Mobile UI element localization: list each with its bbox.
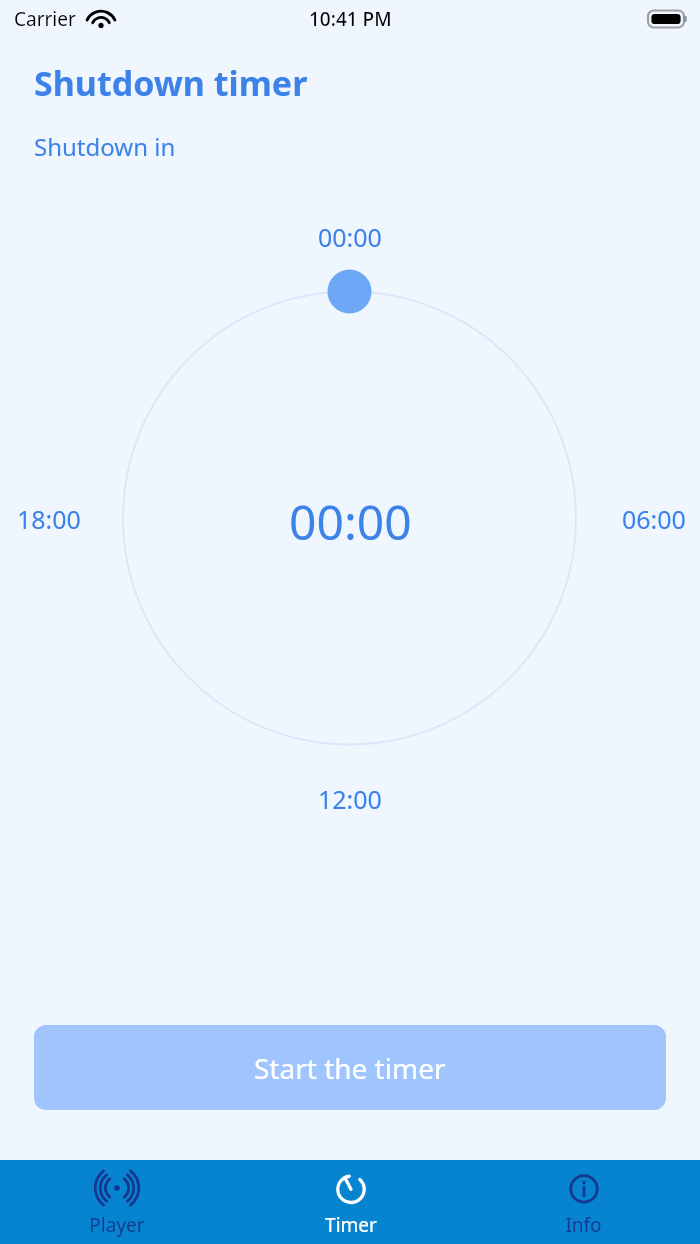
button[interactable]: Player xyxy=(0,1160,234,1244)
button[interactable]: Info xyxy=(467,1160,700,1244)
staticText: Timer xyxy=(325,1212,377,1238)
staticText: 10:41 PM xyxy=(309,6,392,32)
staticText: Player xyxy=(89,1212,145,1238)
button[interactable]: Timer xyxy=(234,1160,467,1244)
staticText: 00:00 xyxy=(289,489,412,554)
staticText: Shutdown in xyxy=(34,130,176,163)
staticText: Start the timer xyxy=(254,1049,446,1087)
button[interactable]: Start the timer xyxy=(34,1025,666,1110)
staticText: 12:00 xyxy=(318,782,382,816)
staticText: Shutdown timer xyxy=(34,60,308,106)
staticText: Info xyxy=(565,1212,602,1238)
staticText: Carrier xyxy=(14,6,76,32)
staticText: 18:00 xyxy=(17,502,81,536)
staticText: 06:00 xyxy=(622,502,686,536)
staticText: 00:00 xyxy=(318,220,382,254)
